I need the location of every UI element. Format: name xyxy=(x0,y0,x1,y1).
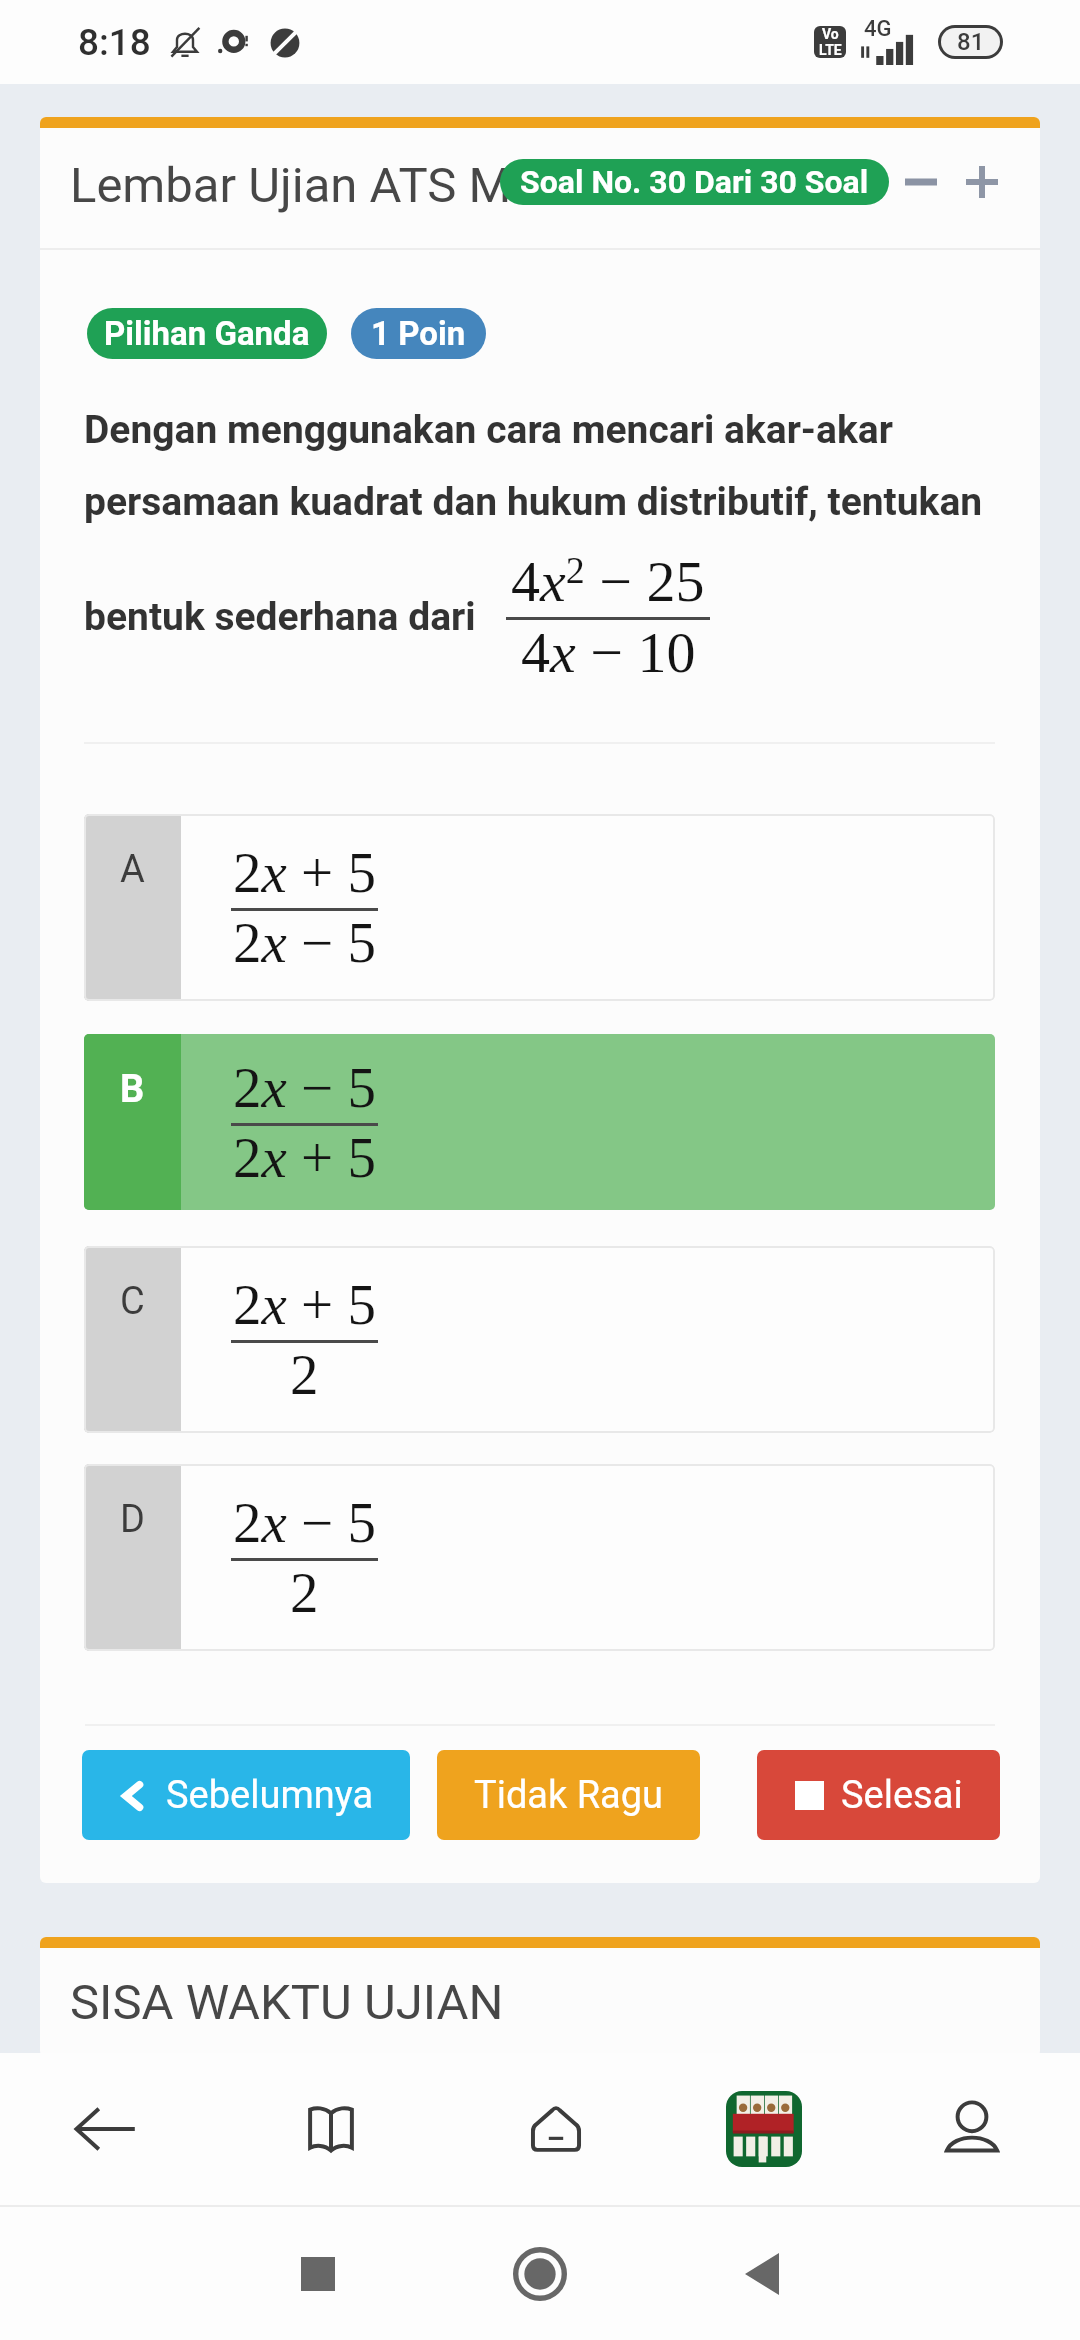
staticText: SISA WAKTU UJIAN xyxy=(70,1974,504,2031)
button[interactable]: D xyxy=(84,1464,995,1651)
button[interactable]: 1 Poin xyxy=(351,308,486,359)
button[interactable]: Back xyxy=(51,2074,161,2184)
button[interactable]: Soal No. 30 Dari 30 Soal xyxy=(500,159,889,205)
staticText: LTE xyxy=(819,42,842,58)
staticText: Selesai xyxy=(841,1773,963,1818)
button[interactable]: Selesai xyxy=(757,1750,1000,1840)
staticText: 2 xyxy=(290,1561,319,1624)
button[interactable]: Book xyxy=(276,2074,386,2184)
staticText: B xyxy=(120,1067,145,1112)
button[interactable]: Home xyxy=(501,2074,611,2184)
staticText: Sebelumnya xyxy=(166,1773,374,1818)
staticText: 4x − 10 xyxy=(521,620,696,684)
button[interactable]: Sebelumnya xyxy=(82,1750,410,1840)
button[interactable]: C xyxy=(84,1246,995,1433)
button[interactable]: A xyxy=(84,814,995,1001)
staticText: 2x − 5 xyxy=(233,1491,376,1554)
staticText: Soal No. 30 Dari 30 Soal xyxy=(520,163,869,201)
staticText: Tidak Ragu xyxy=(474,1773,664,1818)
staticText: 1 Poin xyxy=(371,314,466,353)
staticText: 4x2 − 25 xyxy=(511,549,705,613)
button[interactable]: B xyxy=(84,1034,995,1210)
staticText: 2 xyxy=(290,1343,319,1406)
staticText: 2x − 5 xyxy=(233,1056,376,1119)
staticText: Pilihan Ganda xyxy=(104,314,310,353)
staticText: persamaan kuadrat dan hukum distributif,… xyxy=(84,479,983,525)
staticText: Vo xyxy=(822,26,839,42)
button[interactable]: Solitaire xyxy=(726,2091,802,2167)
staticText: D xyxy=(120,1497,145,1542)
staticText: 2x + 5 xyxy=(233,1126,376,1189)
staticText: 2x + 5 xyxy=(233,841,376,904)
button[interactable]: Zoom out xyxy=(889,150,953,214)
staticText: A xyxy=(120,847,145,892)
button[interactable]: Back xyxy=(712,2224,812,2324)
button[interactable]: Tidak Ragu xyxy=(437,1750,700,1840)
button[interactable]: Pilihan Ganda xyxy=(87,308,327,359)
staticText: Lembar Ujian ATS Matematika xyxy=(70,157,730,214)
button[interactable]: Zoom in xyxy=(950,150,1014,214)
staticText: 4G xyxy=(864,16,892,42)
staticText: 81 xyxy=(957,28,985,56)
button[interactable]: Home xyxy=(490,2224,590,2324)
staticText: Dengan menggunakan cara mencari akar-aka… xyxy=(84,407,893,453)
staticText: 2x + 5 xyxy=(233,1273,376,1336)
staticText: C xyxy=(120,1279,145,1324)
button[interactable]: Recents xyxy=(268,2224,368,2324)
button[interactable]: Profile xyxy=(917,2074,1027,2184)
staticText: 8:18 xyxy=(78,21,151,64)
staticText: 2x − 5 xyxy=(233,911,376,974)
staticText: bentuk sederhana dari xyxy=(84,594,476,640)
